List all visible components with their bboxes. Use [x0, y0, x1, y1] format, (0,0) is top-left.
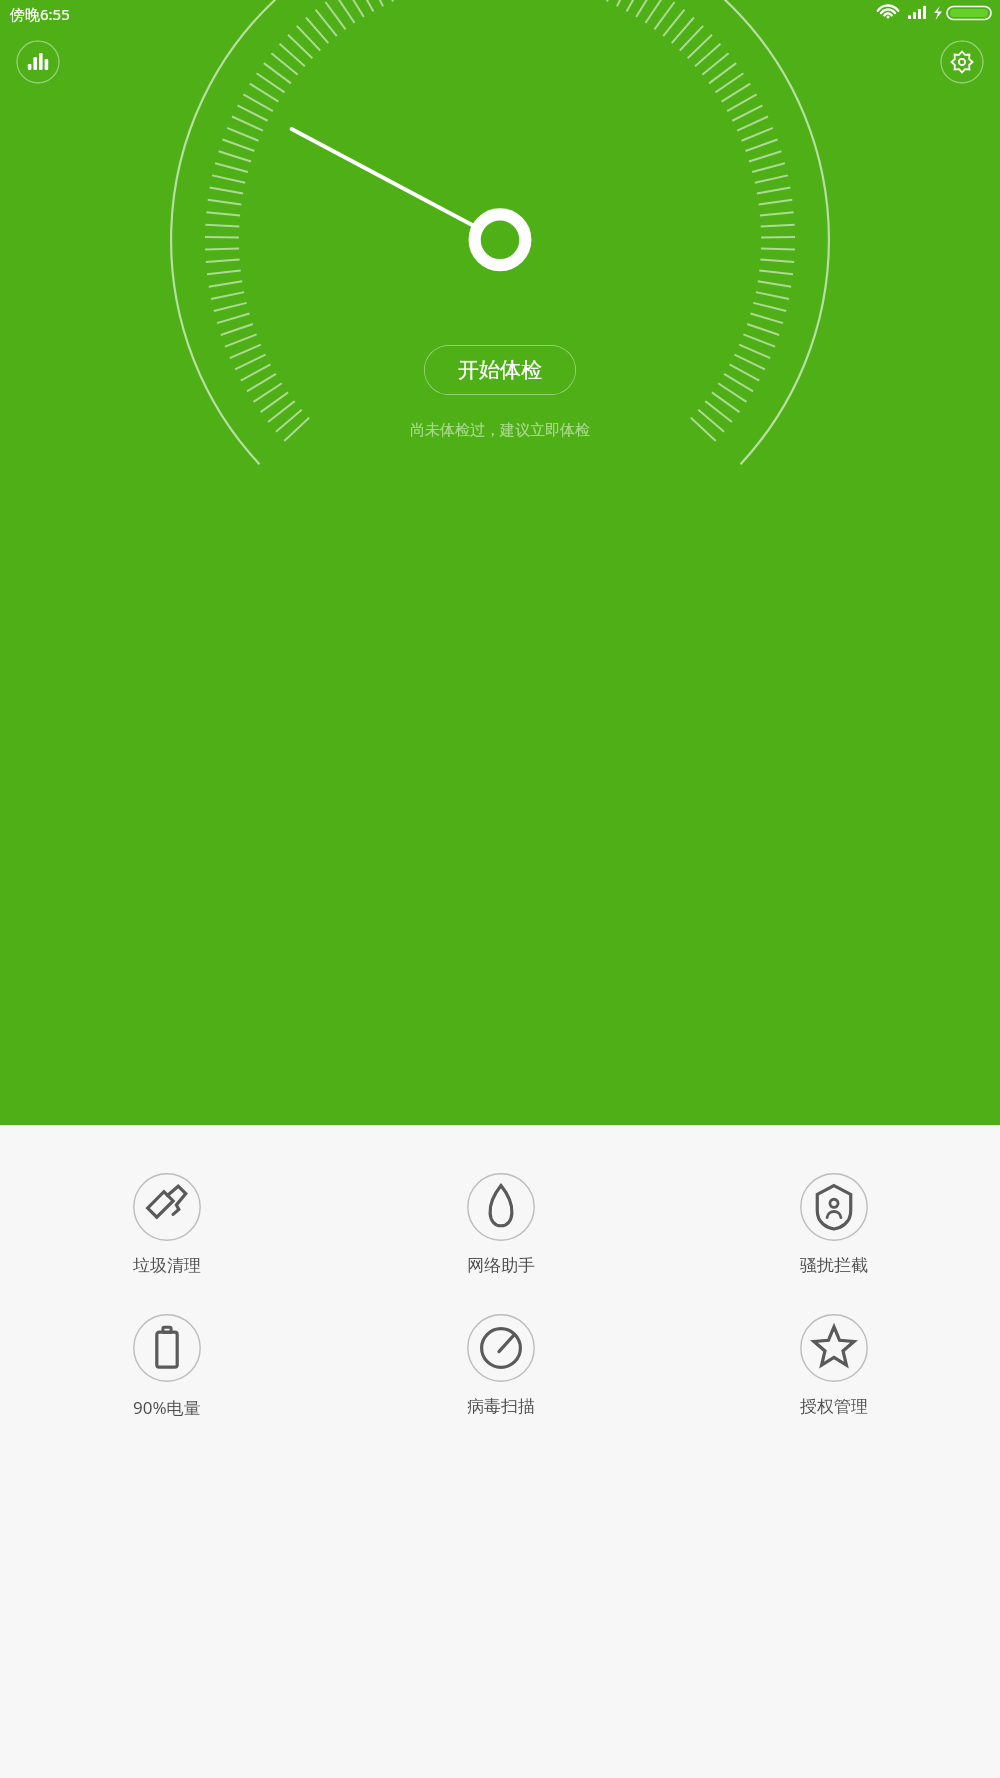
staticText: 尚未体检过，建议立即体检	[410, 421, 590, 440]
button[interactable]: 授权管理	[667, 1314, 1000, 1417]
button[interactable]: 开始体检	[424, 345, 576, 395]
button[interactable]: Statistics	[16, 40, 60, 84]
staticText: 开始体检	[458, 357, 542, 383]
staticText: 垃圾清理	[133, 1255, 201, 1276]
button[interactable]: 90%电量	[0, 1314, 334, 1419]
staticText: 病毒扫描	[467, 1396, 535, 1417]
staticText: 网络助手	[467, 1255, 535, 1276]
staticText: 授权管理	[800, 1396, 868, 1417]
button[interactable]: Settings	[940, 40, 984, 84]
staticText: 骚扰拦截	[800, 1255, 868, 1276]
button[interactable]: 骚扰拦截	[667, 1173, 1000, 1276]
staticText: 90%电量	[133, 1396, 201, 1419]
button[interactable]: 网络助手	[334, 1173, 667, 1276]
staticText: 傍晚6:55	[10, 4, 70, 24]
button[interactable]: 垃圾清理	[0, 1173, 334, 1276]
button[interactable]: 病毒扫描	[334, 1314, 667, 1417]
